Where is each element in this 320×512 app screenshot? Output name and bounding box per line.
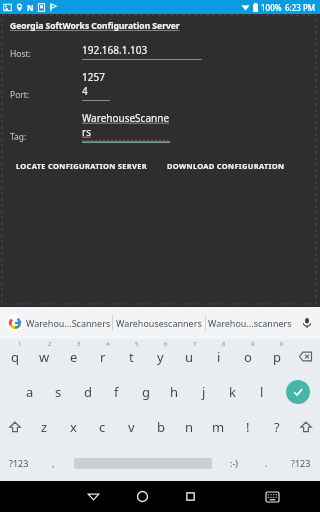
staticText: 8 <box>222 340 226 348</box>
button[interactable]: p <box>262 339 291 374</box>
staticText: 7 <box>193 340 197 348</box>
staticText: Tag: <box>10 131 27 143</box>
button[interactable]: h <box>160 374 189 409</box>
staticText: Warehou...scanners <box>208 317 292 329</box>
staticText: y <box>157 348 164 366</box>
button[interactable]: DOWNLOAD CONFIGURATION <box>161 156 291 176</box>
button[interactable]: i <box>204 339 233 374</box>
staticText: 6 <box>164 340 168 348</box>
button[interactable]: Space <box>68 445 218 481</box>
button[interactable]: Shift <box>0 409 30 445</box>
button[interactable]: y <box>146 339 175 374</box>
button[interactable]: b <box>146 409 175 445</box>
staticText: p <box>273 348 281 366</box>
button[interactable]: o <box>233 339 262 374</box>
staticText: Georgia SoftWorks Configuration Server <box>10 20 180 32</box>
button[interactable]: n <box>175 409 204 445</box>
staticText: u <box>185 348 194 366</box>
button[interactable]: WarehouseScanners <box>82 111 170 143</box>
button[interactable]: u <box>175 339 204 374</box>
staticText: Warehousescanners <box>116 317 202 329</box>
button[interactable]: . <box>251 445 281 481</box>
staticText: , <box>52 457 55 469</box>
staticText: 100% <box>261 2 282 13</box>
staticText: Host: <box>10 48 31 60</box>
staticText: 12574 <box>82 70 110 98</box>
staticText: Port: <box>10 89 30 101</box>
button[interactable]: Backspace <box>291 339 320 374</box>
button[interactable]: a <box>15 374 44 409</box>
staticText: N <box>27 2 34 13</box>
button[interactable]: s <box>44 374 73 409</box>
staticText: DOWNLOAD CONFIGURATION <box>167 161 285 171</box>
staticText: z <box>41 418 48 436</box>
staticText: 4 <box>106 340 110 348</box>
staticText: 6:23 PM <box>285 2 316 13</box>
button[interactable]: Shift <box>291 409 320 445</box>
button[interactable]: :-) <box>218 445 251 481</box>
button[interactable]: r <box>88 339 117 374</box>
staticText: e <box>70 348 78 366</box>
button[interactable]: 12574 <box>82 70 110 101</box>
staticText: s <box>55 383 62 401</box>
button[interactable]: j <box>189 374 218 409</box>
button[interactable]: , <box>38 445 68 481</box>
staticText: h <box>170 383 179 401</box>
staticText: 1 <box>18 340 22 348</box>
staticText: ?123 <box>9 457 29 469</box>
button[interactable]: ? <box>262 409 291 445</box>
button[interactable]: x <box>59 409 88 445</box>
staticText: c <box>99 418 106 436</box>
button[interactable]: w <box>30 339 59 374</box>
button[interactable]: Enter <box>276 374 320 409</box>
staticText: :-) <box>230 457 239 469</box>
staticText: v <box>128 418 135 436</box>
button[interactable]: q <box>0 339 30 374</box>
staticText: ?123 <box>291 457 311 469</box>
button[interactable]: t <box>117 339 146 374</box>
button[interactable]: Change keyboard <box>248 481 296 512</box>
button[interactable]: m <box>204 409 233 445</box>
button[interactable]: Google <box>6 314 24 332</box>
staticText: 5 <box>135 340 139 348</box>
button[interactable]: Back <box>69 481 118 512</box>
button[interactable]: v <box>117 409 146 445</box>
button[interactable]: z <box>30 409 59 445</box>
button[interactable]: g <box>131 374 160 409</box>
staticText: t <box>129 348 134 366</box>
staticText: . <box>265 457 268 469</box>
staticText: 192.168.1.103 <box>82 43 148 57</box>
button[interactable]: c <box>88 409 117 445</box>
button[interactable]: Warehousescanners <box>113 307 205 339</box>
staticText: w <box>39 348 50 366</box>
button[interactable]: Home <box>118 481 166 512</box>
staticText: WarehouseScanners <box>82 111 170 139</box>
button[interactable]: Voice input <box>294 307 320 339</box>
staticText: m <box>212 418 225 436</box>
button[interactable]: Recent apps <box>166 481 214 512</box>
staticText: f <box>114 383 119 401</box>
staticText: LOCATE CONFIGURATION SERVER <box>16 161 147 171</box>
staticText: o <box>244 348 252 366</box>
staticText: j <box>202 383 206 401</box>
button[interactable]: ! <box>233 409 262 445</box>
button[interactable]: e <box>59 339 88 374</box>
staticText: g <box>142 383 150 401</box>
staticText: k <box>229 383 236 401</box>
button[interactable]: Warehou...Scanners <box>24 307 112 339</box>
staticText: d <box>84 383 92 401</box>
button[interactable]: ?123 <box>0 445 38 481</box>
button[interactable]: f <box>102 374 131 409</box>
button[interactable]: d <box>73 374 102 409</box>
staticText: 3 <box>77 340 81 348</box>
staticText: l <box>260 383 264 401</box>
staticText: 0 <box>280 340 284 348</box>
button[interactable]: LOCATE CONFIGURATION SERVER <box>10 156 153 176</box>
button[interactable]: l <box>247 374 276 409</box>
button[interactable]: 192.168.1.103 <box>82 43 202 60</box>
button[interactable]: k <box>218 374 247 409</box>
button[interactable]: Warehou...scanners <box>206 307 294 339</box>
staticText: x <box>70 418 77 436</box>
staticText: ? <box>274 418 280 436</box>
button[interactable]: ?123 <box>281 445 320 481</box>
